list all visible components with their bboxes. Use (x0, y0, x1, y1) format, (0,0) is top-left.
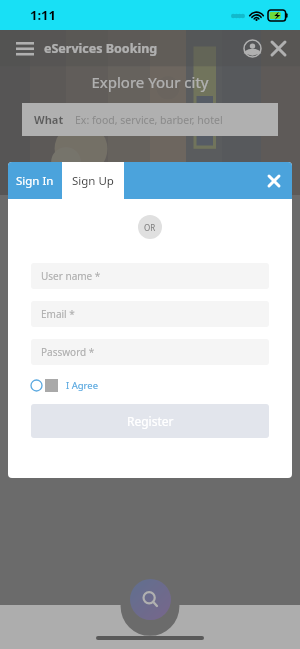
staticText: Password * (41, 345, 95, 359)
button[interactable]: Search (130, 579, 171, 620)
button[interactable]: Register (31, 404, 269, 438)
button[interactable]: Close (268, 36, 288, 60)
button[interactable]: What (22, 103, 278, 136)
staticText: I Agree (66, 379, 99, 392)
button[interactable]: Email * (31, 301, 269, 327)
staticText: Email * (41, 307, 75, 321)
staticText: Explore Your city (0, 72, 300, 92)
button[interactable]: Sign In (8, 162, 62, 199)
button[interactable]: Password * (31, 339, 269, 365)
staticText: Ex: food, service, barber, hotel (75, 113, 223, 127)
button[interactable]: Sign Up (62, 162, 124, 199)
button[interactable]: Close dialog (256, 163, 292, 199)
staticText: Sign Up (72, 173, 114, 189)
staticText: Register (127, 413, 174, 429)
button[interactable]: I Agree (31, 379, 99, 392)
button[interactable]: User name * (31, 263, 269, 289)
staticText: User name * (41, 269, 101, 283)
staticText: 1:11 (30, 6, 56, 24)
staticText: OR (144, 222, 156, 233)
staticText: Sign In (16, 173, 54, 189)
button[interactable]: Open navigation menu (12, 35, 38, 61)
staticText: What (34, 112, 64, 127)
staticText: eServices Booking (44, 40, 158, 57)
button[interactable]: Account (240, 36, 264, 60)
